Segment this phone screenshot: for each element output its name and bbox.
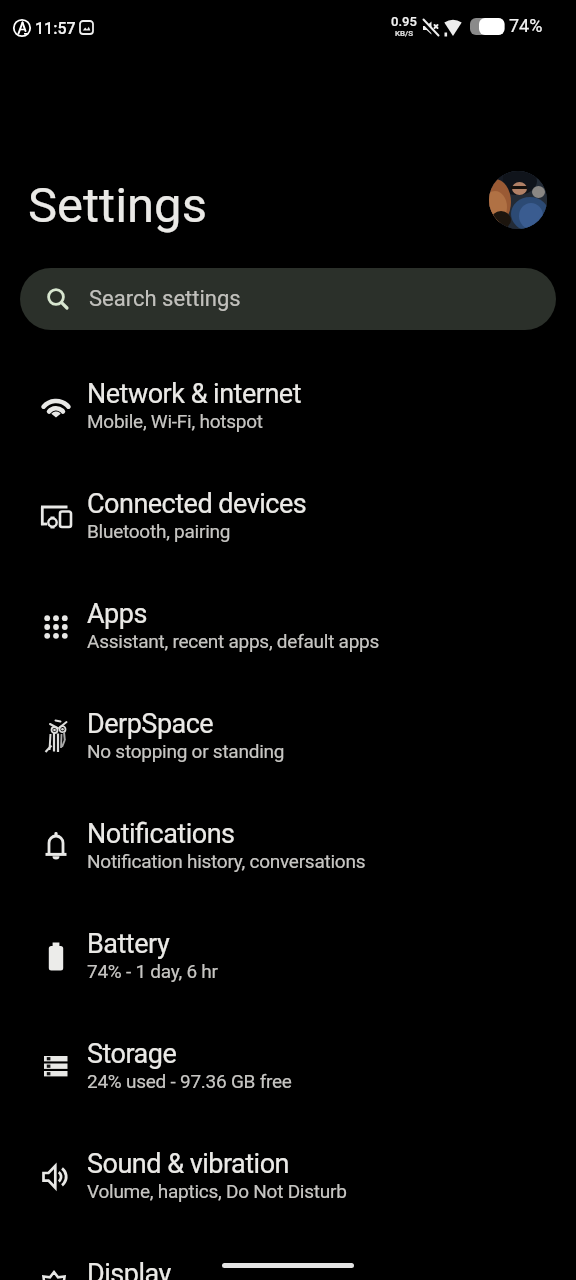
staticText: Notifications [87,818,235,850]
staticText: Settings [28,177,207,234]
button[interactable]: Storage [0,1010,576,1120]
staticText: Apps [87,598,147,630]
button[interactable]: Notifications [0,790,576,900]
staticText: 74% - 1 day, 6 hr [87,960,218,982]
button[interactable]: DerpSpace [0,680,576,790]
staticText: Sound & vibration [87,1148,289,1180]
staticText: Network & internet [87,378,301,410]
button[interactable]: Apps [0,570,576,680]
staticText: Notification history, conversations [87,850,366,872]
staticText: Bluetooth, pairing [87,520,231,542]
staticText: No stopping or standing [87,740,285,762]
button[interactable] [489,171,547,229]
button[interactable]: Sound & vibration [0,1120,576,1230]
staticText: KB/S [395,29,414,38]
staticText: Connected devices [87,488,307,520]
staticText: Display [87,1258,171,1280]
staticText: 74% [509,15,543,36]
staticText: 24% used - 97.36 GB free [87,1070,292,1092]
staticText: Mobile, Wi-Fi, hotspot [87,410,263,432]
staticText: Volume, haptics, Do Not Disturb [87,1180,347,1202]
button[interactable]: Display [0,1230,576,1280]
staticText: 0.95 [391,14,417,29]
staticText: Battery [87,928,170,960]
button[interactable]: Search settings [20,268,556,330]
staticText: Storage [87,1038,177,1070]
staticText: Search settings [89,286,241,312]
button[interactable]: Connected devices [0,460,576,570]
button[interactable]: Battery [0,900,576,1010]
staticText: DerpSpace [87,708,214,740]
button[interactable]: Network & internet [0,350,576,460]
staticText: 11:57 [35,19,76,38]
staticText: Assistant, recent apps, default apps [87,630,380,652]
